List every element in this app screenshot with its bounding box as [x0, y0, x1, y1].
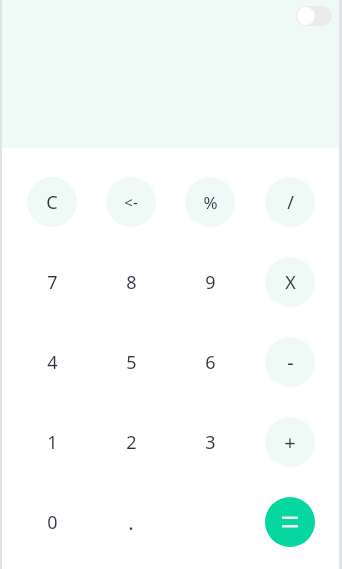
button[interactable]: Subtract — [265, 337, 315, 387]
button[interactable]: 3 — [185, 417, 235, 467]
button[interactable]: 1 — [27, 417, 77, 467]
button[interactable]: Backspace — [106, 177, 156, 227]
button[interactable]: 6 — [185, 337, 235, 387]
staticText: 2 — [126, 430, 137, 455]
staticText: 0 — [47, 510, 58, 535]
staticText: X — [285, 270, 296, 295]
staticText: / — [287, 190, 294, 215]
staticText: - — [287, 349, 294, 376]
staticText: 7 — [47, 270, 58, 295]
button[interactable]: Percent — [185, 177, 235, 227]
staticText: 9 — [205, 270, 216, 295]
staticText: 8 — [126, 270, 137, 295]
button[interactable]: Add — [265, 417, 315, 467]
button[interactable]: Toggle theme — [296, 6, 332, 26]
button[interactable]: Clear — [27, 177, 77, 227]
staticText: C — [46, 190, 58, 215]
staticText: 3 — [205, 430, 216, 455]
staticText: 6 — [205, 350, 216, 375]
button[interactable]: Equals — [265, 497, 315, 547]
button[interactable]: 0 — [27, 497, 77, 547]
button[interactable]: 2 — [106, 417, 156, 467]
staticText: . — [128, 509, 134, 536]
staticText: 1 — [47, 430, 58, 455]
button[interactable]: Decimal point — [106, 497, 156, 547]
staticText: % — [203, 191, 218, 214]
staticText: 4 — [47, 350, 58, 375]
button[interactable]: 8 — [106, 257, 156, 307]
button[interactable]: 5 — [106, 337, 156, 387]
button[interactable]: Multiply — [265, 257, 315, 307]
staticText: + — [284, 429, 296, 456]
button[interactable]: 9 — [185, 257, 235, 307]
button[interactable]: 7 — [27, 257, 77, 307]
button[interactable]: Divide — [265, 177, 315, 227]
button[interactable]: 4 — [27, 337, 77, 387]
staticText: 5 — [126, 350, 137, 375]
staticText: <- — [124, 192, 138, 212]
